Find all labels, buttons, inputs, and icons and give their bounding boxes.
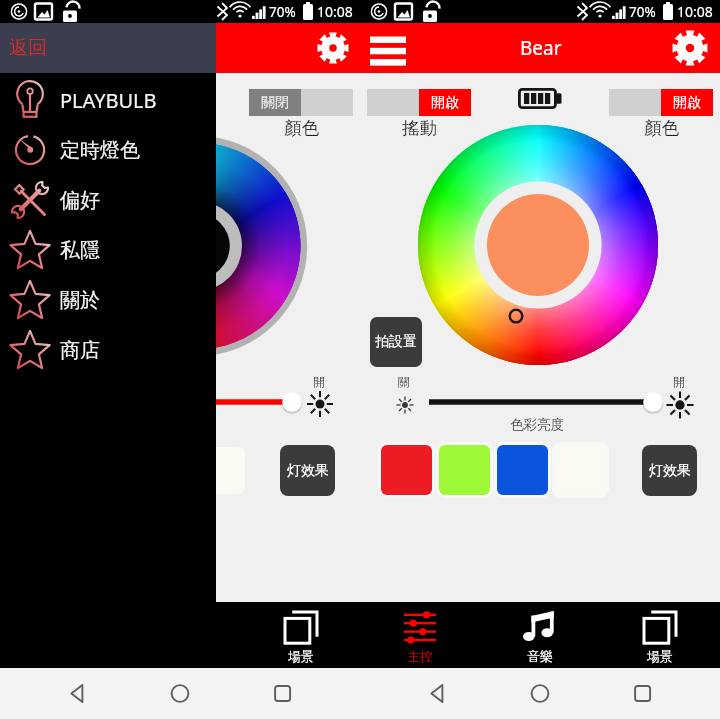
button[interactable]: 關閉 [249, 89, 353, 116]
button[interactable]: 關於 [0, 275, 216, 325]
staticText: 開 [313, 374, 325, 389]
button[interactable]: PLAYBULB [0, 75, 216, 125]
button[interactable]: Menu [368, 28, 408, 68]
button[interactable]: 場景 [241, 602, 360, 668]
button[interactable]: 私隱 [0, 225, 216, 275]
staticText: 關閉 [261, 94, 289, 112]
staticText: 色彩亮度 [510, 416, 564, 433]
staticText: 70% [269, 3, 296, 21]
button[interactable]: Colour brightness slider [425, 390, 663, 415]
button[interactable]: 定時燈色 [0, 125, 216, 175]
staticText: 場景 [647, 648, 673, 664]
staticText: 10:08 [677, 2, 713, 21]
staticText: 關 [398, 374, 410, 389]
button[interactable] [494, 442, 551, 498]
button[interactable] [436, 442, 493, 498]
staticText: 灯效果 [287, 462, 329, 480]
staticText: 音樂 [527, 648, 553, 664]
button[interactable] [378, 442, 435, 498]
button[interactable]: Colour brightness on [667, 390, 694, 417]
button[interactable]: Settings [668, 26, 712, 70]
staticText: 顏色 [284, 117, 319, 139]
staticText: 開啟 [431, 94, 459, 112]
staticText: 商店 [60, 338, 100, 363]
button[interactable]: 商店 [0, 325, 216, 375]
staticText: 關於 [60, 288, 100, 313]
staticText: 場景 [288, 648, 314, 664]
button[interactable]: 偏好 [0, 175, 216, 225]
staticText: 開啟 [673, 94, 701, 112]
button[interactable]: 拍設置 [370, 317, 422, 367]
button[interactable]: 開啟 [609, 89, 713, 116]
staticText: 拍設置 [375, 333, 417, 351]
button[interactable]: 灯效果 [642, 445, 697, 496]
staticText: 開 [673, 374, 685, 389]
staticText: 主控 [407, 648, 433, 664]
staticText: 私隱 [60, 238, 100, 263]
button[interactable]: Brightness slider [216, 390, 302, 415]
staticText: 定時燈色 [60, 138, 140, 163]
button[interactable]: 開啟 [367, 89, 471, 116]
staticText: 返回 [9, 36, 47, 60]
staticText: 灯效果 [649, 462, 691, 480]
staticText: 70% [629, 3, 656, 21]
button[interactable]: 返回 [0, 23, 216, 73]
button[interactable]: 音樂 [480, 602, 600, 668]
staticText: 偏好 [60, 188, 100, 213]
button[interactable]: 場景 [600, 602, 720, 668]
staticText: 顏色 [644, 117, 679, 139]
staticText: Bear [520, 35, 562, 61]
button[interactable]: 主控 [360, 602, 480, 668]
button[interactable]: Device settings [313, 28, 353, 68]
staticText: 10:08 [317, 2, 353, 21]
staticText: 搖動 [402, 117, 437, 139]
button[interactable]: Colour brightness off [394, 392, 416, 414]
staticText: PLAYBULB [60, 87, 157, 114]
button[interactable]: 灯效果 [280, 445, 335, 496]
button[interactable]: Brightness on [308, 390, 334, 416]
